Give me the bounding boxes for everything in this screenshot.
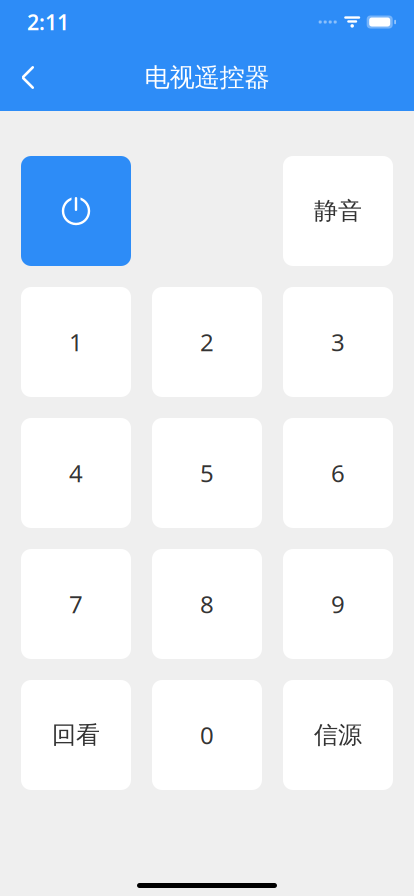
staticText: 8 [200,588,214,620]
button[interactable]: 5 [152,418,262,528]
staticText: 7 [69,588,83,620]
button[interactable]: 信源 [283,680,393,790]
button[interactable]: 2 [152,287,262,397]
staticText: 1 [69,326,83,358]
button[interactable]: 4 [21,418,131,528]
staticText: 9 [331,588,345,620]
button[interactable]: 1 [21,287,131,397]
button[interactable]: 9 [283,549,393,659]
button[interactable]: 电源 [21,156,131,266]
staticText: 3 [331,326,345,358]
button[interactable]: 回看 [21,680,131,790]
button[interactable]: 0 [152,680,262,790]
button[interactable]: 7 [21,549,131,659]
button[interactable]: 3 [283,287,393,397]
button[interactable]: 8 [152,549,262,659]
staticText: 0 [200,719,214,751]
staticText: 信源 [314,720,362,750]
staticText: 回看 [52,720,100,750]
staticText: 电视遥控器 [144,62,269,93]
staticText: 4 [69,457,83,489]
button[interactable]: 6 [283,418,393,528]
staticText: 2:11 [27,8,69,36]
button[interactable]: 返回 [5,54,51,100]
button[interactable]: 静音 [283,156,393,266]
staticText: 5 [200,457,214,489]
staticText: 静音 [314,196,362,226]
staticText: 6 [331,457,345,489]
staticText: 2 [200,326,214,358]
